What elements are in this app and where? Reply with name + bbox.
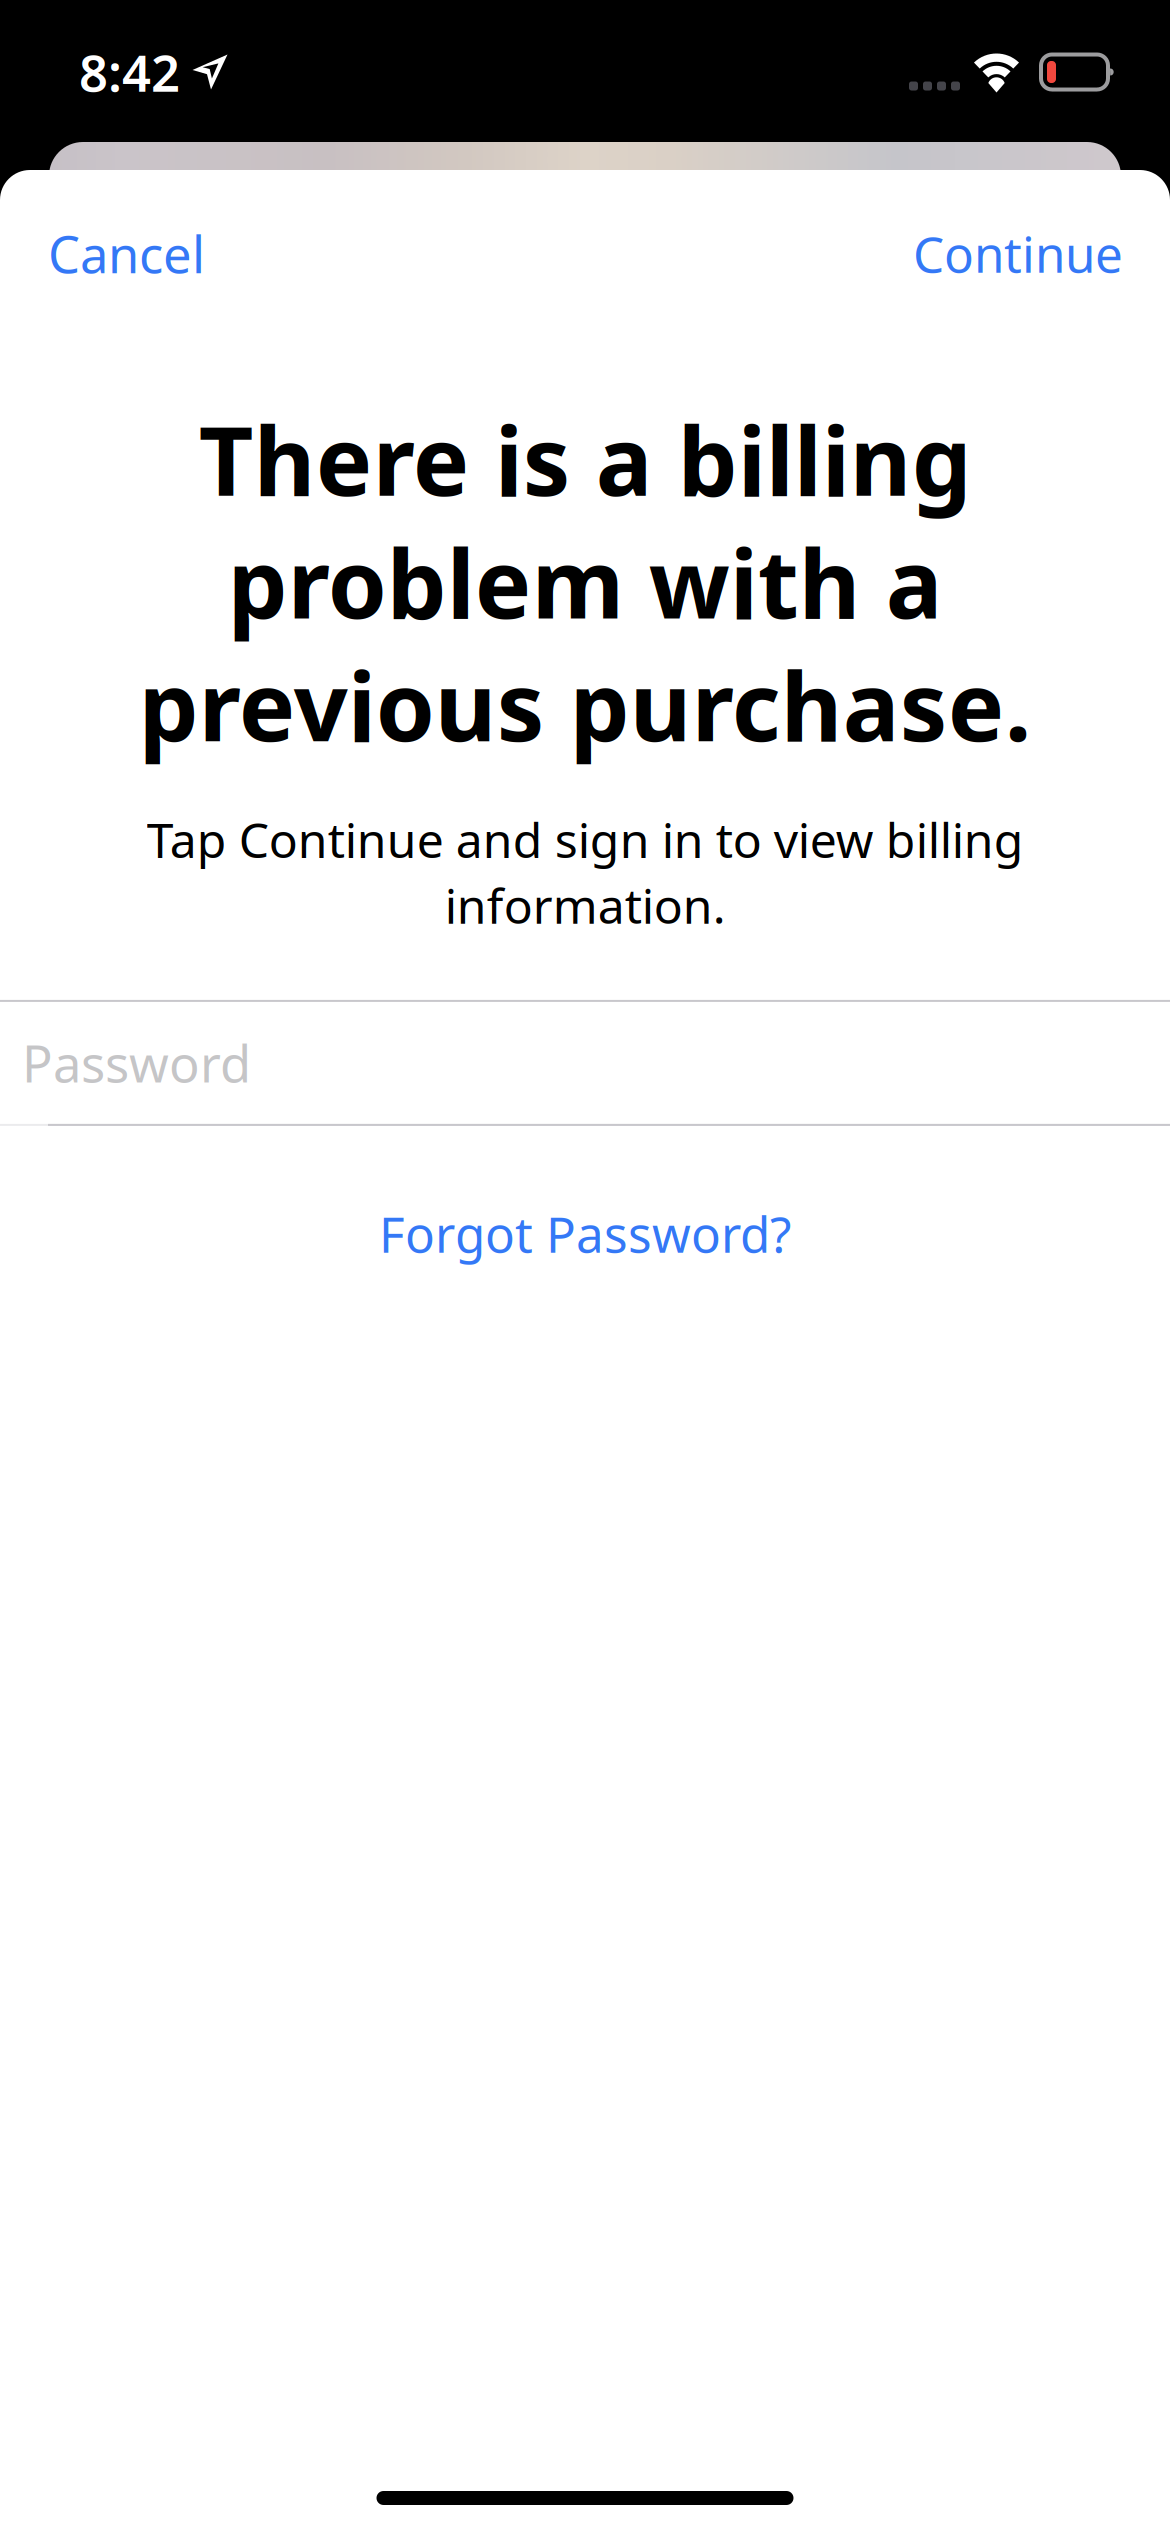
staticText: 8:42 [79,38,180,106]
button[interactable]: Forgot Password? [335,1185,835,1282]
staticText: Tap Continue and sign in to view billing… [146,807,1023,937]
staticText: Forgot Password? [379,1201,791,1266]
staticText: Password [22,1029,251,1097]
staticText: There is a billing problem with a previo… [138,396,1031,767]
button[interactable]: Password [0,1000,1170,1126]
staticText: Continue [913,221,1123,286]
staticText: Cancel [48,220,205,287]
button[interactable]: Cancel [0,170,245,337]
button[interactable]: Continue [873,171,1170,336]
